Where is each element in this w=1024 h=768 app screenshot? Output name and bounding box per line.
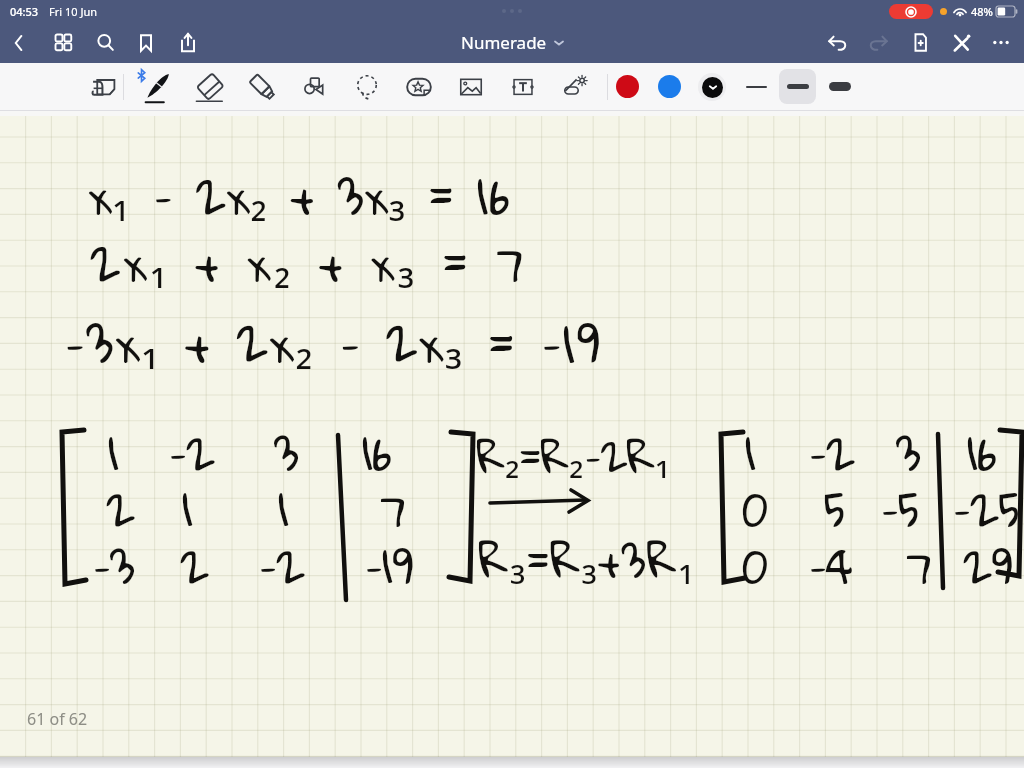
button[interactable]: Page flip [82,63,126,110]
staticText: 5 [824,465,846,552]
staticText: 1 [745,409,756,496]
staticText: Fri 10 Jun [49,4,97,19]
button[interactable]: Text [498,63,548,110]
button[interactable]: Medium stroke selected [779,69,816,104]
button[interactable]: More options [981,22,1021,63]
button[interactable]: Search [85,22,125,63]
staticText: 16 [362,409,393,496]
staticText: 1 [108,409,119,496]
button[interactable]: Image [446,63,496,110]
button[interactable]: Red colour [611,63,644,110]
staticText: 0 [742,522,768,609]
button[interactable]: Pen [132,63,182,110]
button[interactable]: Undo [817,22,857,63]
staticText: 1 [278,465,289,552]
staticText: −2 [168,409,215,496]
staticText: 04:53 [10,4,39,19]
button[interactable]: Highlighter [237,63,287,110]
staticText: 1 [182,465,193,552]
staticText: −3x₁ + 2x₂ − 2x₃ = −19 [64,296,603,391]
button[interactable]: Add page [900,22,940,63]
button[interactable]: Blue colour [653,63,686,110]
button[interactable]: Redo [858,22,898,63]
button[interactable]: Lasso [342,63,392,110]
button[interactable]: Bookmark [126,22,166,63]
button[interactable]: Back [0,22,39,63]
staticText: 48% [971,4,993,19]
staticText: −4 [808,522,853,609]
staticText: −3 [92,522,135,609]
staticText: 3 [896,409,921,496]
staticText: Numerade [461,31,547,54]
button[interactable]: Eraser [185,63,235,110]
staticText: 7 [906,522,932,609]
staticText: −5 [880,465,920,552]
button[interactable]: Thin stroke [738,63,774,110]
button[interactable]: Share [168,22,208,63]
staticText: −2 [258,522,305,609]
staticText: 16 [967,409,998,496]
button[interactable]: Cut [941,22,981,63]
button[interactable]: Shapes [290,63,340,110]
staticText: 3 [274,409,299,496]
button[interactable]: Pages [43,22,83,63]
staticText: 29 [963,522,1013,609]
staticText: 2 [180,522,209,609]
staticText: R₃=R₃+3R₁ [479,518,695,603]
button[interactable]: Black colour selected [694,63,730,110]
staticText: 2x₁ + x₂ + x₃ = 7 [90,217,528,308]
staticText: 0 [742,465,768,552]
button[interactable]: Numerade [461,31,564,54]
staticText: 2 [106,465,135,552]
staticText: 61 of 62 [27,708,88,730]
button[interactable]: Magic wand [550,63,600,110]
staticText: −25 [952,465,1020,552]
button[interactable]: Sticker [394,63,444,110]
staticText: x₁ − 2x₂ + 3x₃ = 16 [89,150,513,241]
staticText: 7 [380,465,406,552]
button[interactable]: Thick stroke [822,63,858,110]
staticText: −2 [808,409,855,496]
staticText: −19 [364,522,414,609]
staticText: R₂=R₂−2R₁ [477,415,670,496]
